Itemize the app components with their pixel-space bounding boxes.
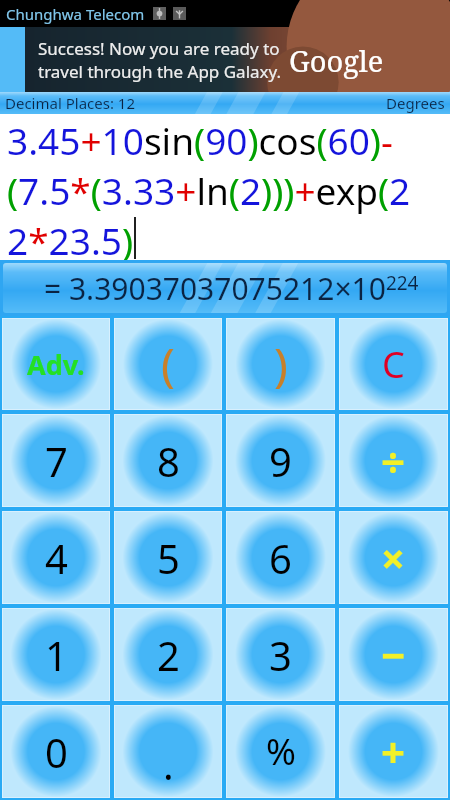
button[interactable]: 9 [227,415,334,506]
button[interactable]: 1 [3,609,109,700]
button[interactable]: C [340,319,447,409]
button[interactable]: 2 [115,609,221,700]
button[interactable]: 6 [227,512,334,603]
button[interactable]: 7 [3,415,109,506]
staticText: 0 [45,725,68,779]
staticText: × [381,529,406,586]
staticText: 3 [269,628,292,682]
staticText: − [381,626,406,683]
button[interactable]: × [340,512,447,603]
button[interactable]: Degrees [386,93,445,113]
button[interactable]: − [340,609,447,700]
staticText: Google [289,41,384,80]
staticText: travel through the App Galaxy. [38,60,282,83]
button[interactable]: ( [115,319,221,409]
staticText: 6 [269,531,292,585]
staticText: 8 [157,434,180,488]
button[interactable]: Decimal Places: 12 [5,93,135,113]
staticText: Degrees [386,93,445,113]
button[interactable]: Advertisement [0,27,450,92]
staticText: ( [161,333,175,396]
button[interactable]: Adv. [3,319,109,409]
staticText: 2 [157,628,180,682]
staticText: Decimal Places: 12 [5,93,135,113]
staticText: + [381,723,406,780]
button[interactable]: % [227,706,334,797]
button[interactable]: 3 [227,609,334,700]
staticText: Adv. [27,346,85,383]
staticText: . [163,737,174,791]
button[interactable]: ÷ [340,415,447,506]
staticText: % [266,727,296,776]
staticText: 9 [269,434,292,488]
button[interactable]: . [115,706,221,797]
button[interactable]: 0 [3,706,109,797]
staticText: 5 [157,531,180,585]
button[interactable]: ) [227,319,334,409]
staticText: C [382,340,405,389]
staticText: ) [274,333,288,396]
staticText: ÷ [381,432,406,489]
staticText: 1 [45,628,68,682]
staticText: 4 [45,531,68,585]
staticText: 2*23.5) [7,215,134,260]
staticText: Success! Now you are ready to [38,37,280,60]
button[interactable]: = 3.39037037075212×10224 [0,260,450,316]
button[interactable]: + [340,706,447,797]
staticText: 3.45+10sin(90)cos(60)- [7,115,393,165]
staticText: 7 [45,434,68,488]
staticText: = 3.39037037075212×10224 [44,268,419,309]
button[interactable]: 3.45+10sin(90)cos(60)- [0,114,450,260]
button[interactable]: 5 [115,512,221,603]
staticText: Chunghwa Telecom [6,4,145,24]
button[interactable]: 4 [3,512,109,603]
button[interactable]: 8 [115,415,221,506]
staticText: (7.5*(3.33+ln(2)))+exp(2 [7,165,411,215]
